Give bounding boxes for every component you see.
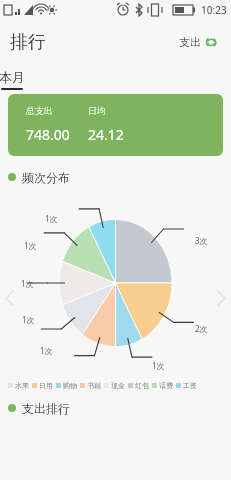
button[interactable]: 本月	[0, 69, 29, 90]
staticText: 1次	[45, 213, 58, 224]
staticText: 工资	[183, 381, 197, 390]
staticText: 支出	[179, 35, 201, 49]
button[interactable]: 书籍	[80, 381, 101, 390]
staticText: 排行	[10, 31, 46, 54]
staticText: 书籍	[87, 381, 101, 390]
staticText: 1次	[22, 314, 35, 325]
staticText: 748.00	[26, 125, 88, 144]
staticText: 话费	[159, 381, 173, 390]
staticText: 本月	[0, 69, 25, 85]
staticText: 1次	[24, 240, 37, 251]
other: Switch income and expense	[205, 36, 217, 48]
button[interactable]: 日用	[32, 381, 53, 390]
staticText: 水果	[15, 381, 29, 390]
button[interactable]: 水果	[8, 381, 29, 390]
staticText: 1次	[40, 345, 53, 356]
staticText: 10:23	[201, 3, 227, 17]
staticText: 2次	[195, 323, 208, 334]
button[interactable]: 支出	[175, 31, 221, 53]
button[interactable]: 红包	[128, 381, 149, 390]
button[interactable]: 话费	[152, 381, 173, 390]
staticText: 现金	[111, 381, 125, 390]
staticText: 24.12	[88, 125, 124, 144]
staticText: 1次	[152, 360, 165, 371]
staticText: 3次	[195, 235, 208, 246]
staticText: 日均	[88, 105, 106, 116]
staticText: 日用	[39, 381, 53, 390]
button[interactable]: 工资	[176, 381, 197, 390]
button[interactable]: 购物	[56, 381, 77, 390]
staticText: 频次分布	[22, 170, 70, 185]
button[interactable]: 总支出	[8, 94, 223, 156]
staticText: 总支出	[26, 105, 88, 116]
staticText: 1次	[21, 278, 34, 289]
staticText: 购物	[63, 381, 77, 390]
staticText: 支出排行	[22, 401, 70, 416]
button[interactable]: 现金	[104, 381, 125, 390]
staticText: 红包	[135, 381, 149, 390]
